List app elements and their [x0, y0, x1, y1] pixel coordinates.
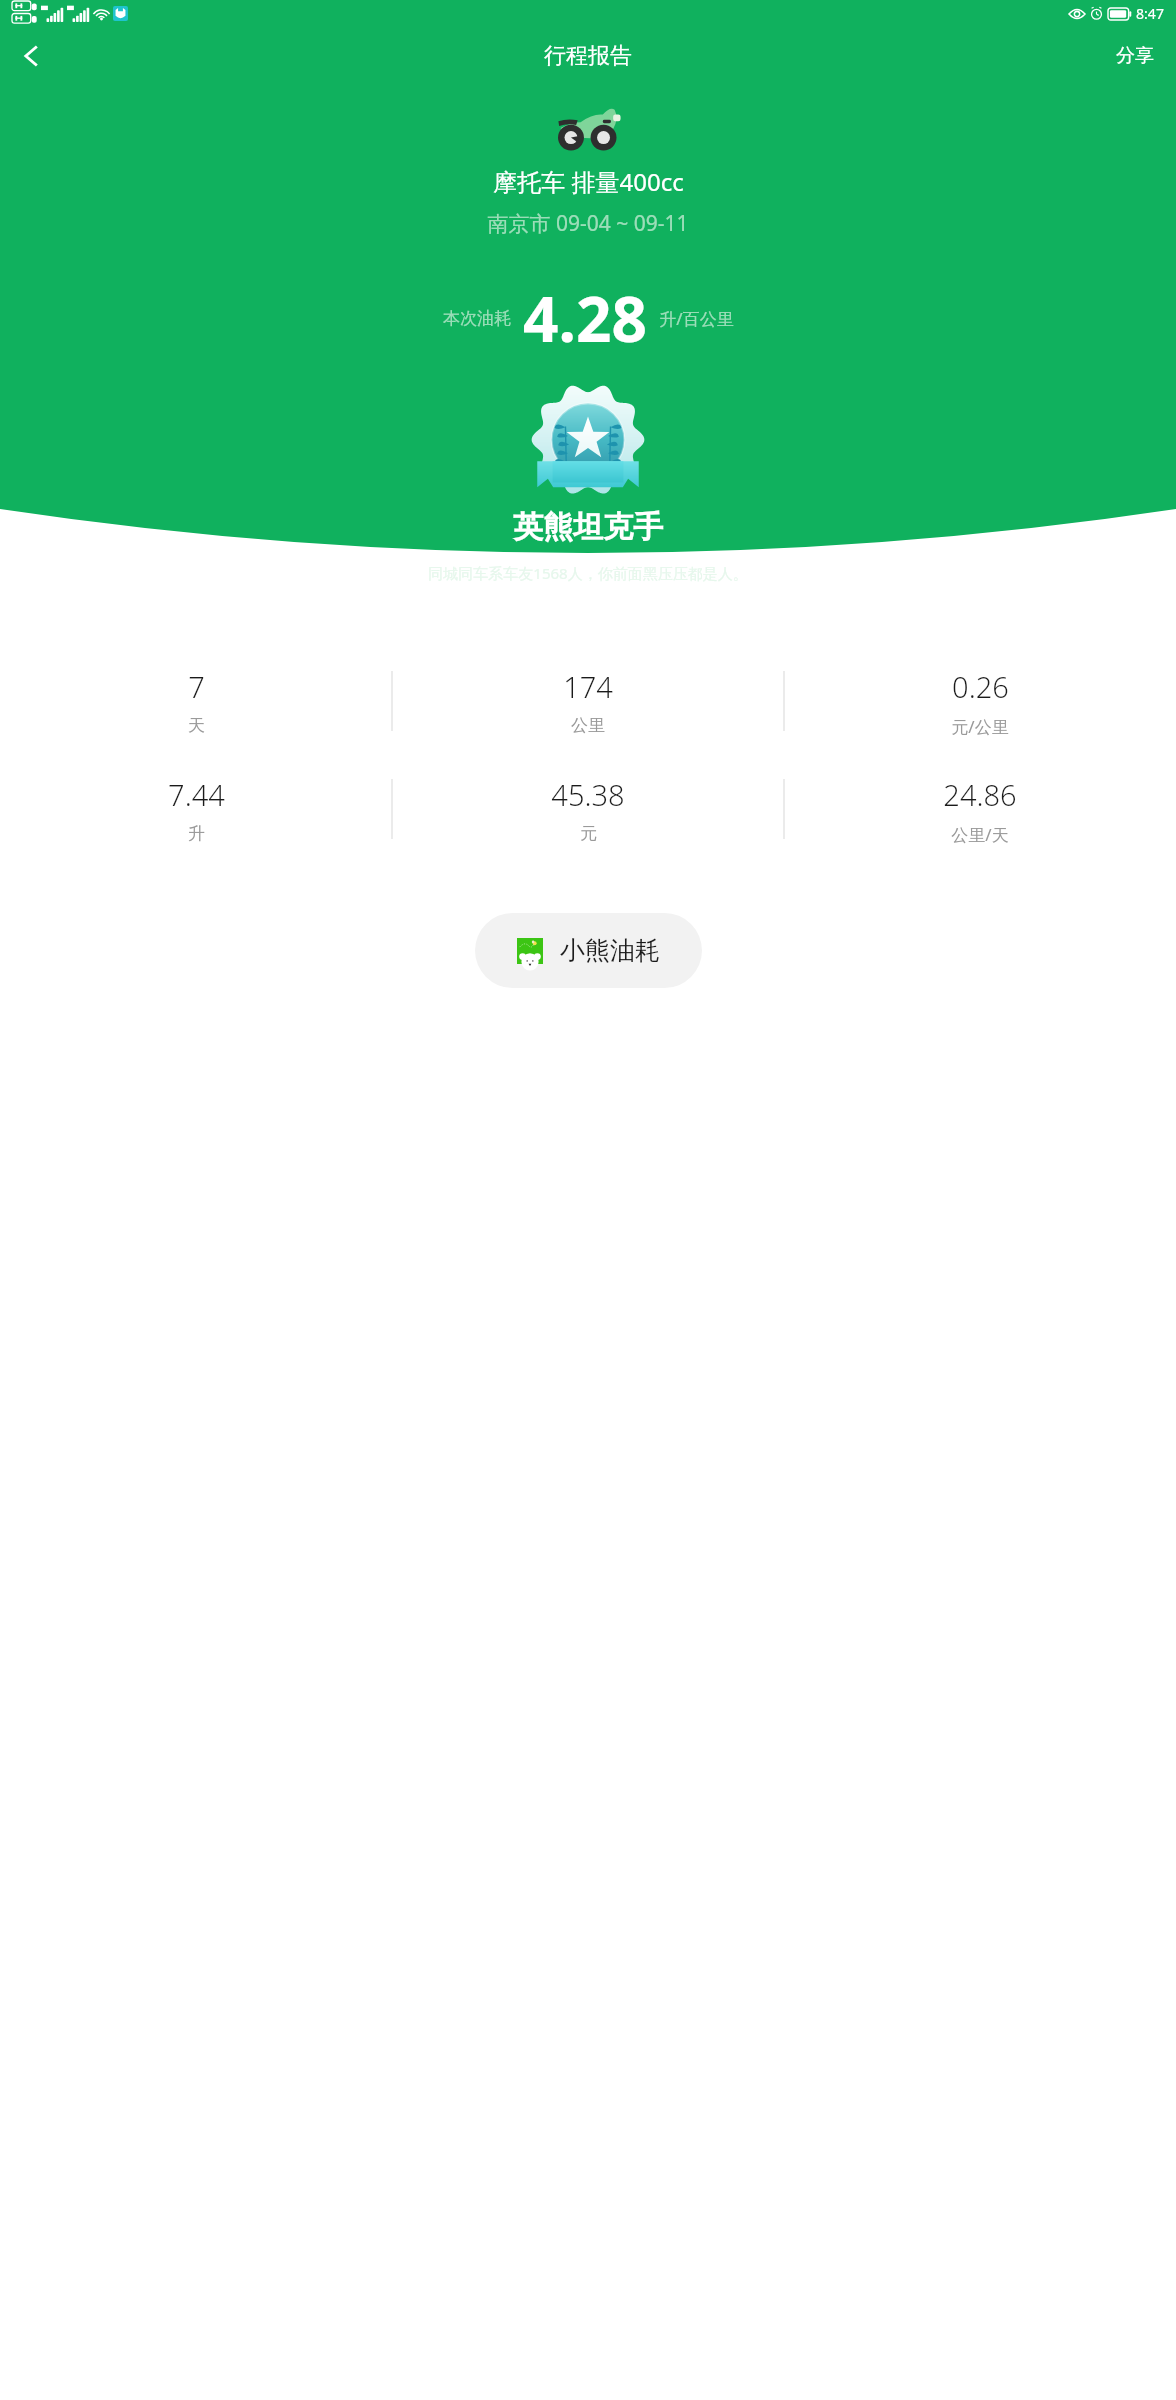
- staticText: 英熊坦克手: [513, 508, 663, 546]
- staticText: 天: [188, 715, 205, 736]
- button[interactable]: 45.38: [392, 775, 784, 857]
- button[interactable]: 7: [0, 667, 392, 749]
- staticText: 公里/天: [951, 823, 1009, 846]
- staticText: 8:47: [1136, 4, 1164, 23]
- staticText: 7: [188, 667, 205, 706]
- staticText: 公里: [571, 715, 605, 736]
- staticText: 174: [563, 667, 613, 706]
- staticText: 4.28: [523, 276, 647, 360]
- staticText: 元/公里: [951, 715, 1009, 738]
- button[interactable]: 分享: [1094, 30, 1176, 82]
- staticText: 45.38: [551, 775, 625, 814]
- button[interactable]: 7.44: [0, 775, 392, 857]
- button[interactable]: 24.86: [784, 775, 1176, 857]
- staticText: 24.86: [943, 775, 1017, 814]
- button[interactable]: 小熊油耗: [475, 913, 702, 988]
- staticText: 行程报告: [544, 42, 632, 70]
- staticText: 小熊油耗: [560, 935, 660, 966]
- button[interactable]: Back: [6, 30, 58, 82]
- staticText: 摩托车 排量400cc: [493, 165, 684, 198]
- button[interactable]: 174: [392, 667, 784, 749]
- staticText: 7.44: [168, 775, 225, 814]
- staticText: 同城同车系车友1568人，你前面黑压压都是人。: [428, 563, 748, 583]
- staticText: 0.26: [952, 667, 1009, 706]
- staticText: 南京市 09-04 ~ 09-11: [487, 209, 689, 238]
- staticText: 本次油耗: [443, 308, 511, 329]
- staticText: 升: [188, 823, 205, 844]
- staticText: 升/百公里: [659, 307, 734, 330]
- staticText: 分享: [1116, 44, 1154, 68]
- button[interactable]: 0.26: [784, 667, 1176, 749]
- staticText: 元: [580, 823, 597, 844]
